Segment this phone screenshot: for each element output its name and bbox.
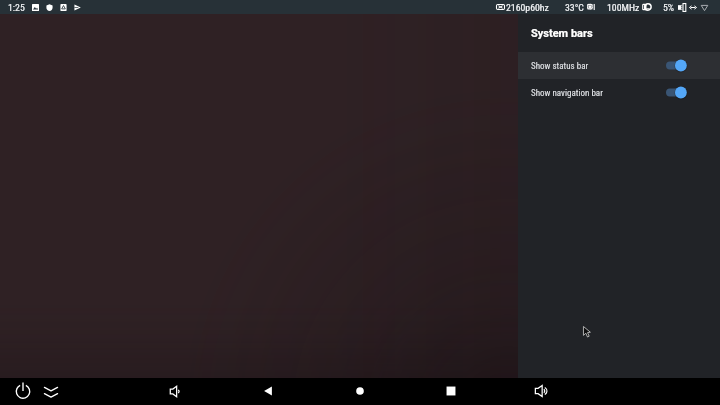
staticText: Show status bar [531, 61, 589, 72]
staticText: 2160p60hz [506, 2, 549, 13]
staticText: Show navigation bar [531, 88, 603, 99]
staticText: 33°C [565, 2, 584, 13]
button[interactable]: Power [15, 383, 31, 399]
button[interactable]: Show status bar [518, 52, 720, 79]
button[interactable]: Recents [445, 385, 457, 397]
button[interactable]: Collapse [43, 383, 59, 399]
staticText: 100MHz [607, 2, 640, 13]
button[interactable]: Show navigation bar [518, 79, 720, 106]
staticText: 5% [663, 2, 675, 13]
staticText: 1:25 [8, 2, 25, 13]
button[interactable]: Volume down [169, 384, 184, 399]
button[interactable]: Volume up [534, 383, 550, 399]
button[interactable]: Home [354, 385, 366, 397]
button[interactable]: Back [262, 385, 274, 397]
staticText: System bars [531, 27, 593, 40]
